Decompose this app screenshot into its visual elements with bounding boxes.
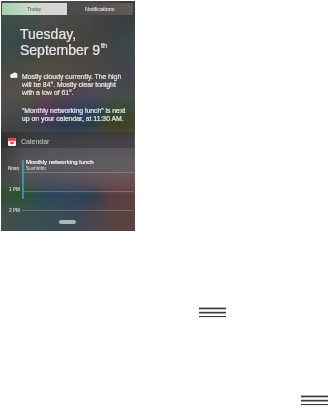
staticText: Calendar [21,138,50,146]
staticText: 1 PM [9,187,20,193]
staticText: Tuesday, [20,26,77,42]
staticText: Today [27,6,42,13]
button[interactable]: Menu [301,395,328,406]
staticText: th [101,42,108,50]
staticText: 2 PM [9,208,20,214]
staticText: Notifications [85,6,115,13]
staticText: Mostly cloudy currently. The high will b… [22,72,125,96]
button[interactable]: Notifications [67,3,133,15]
staticText: Noon [8,166,19,172]
button[interactable]: Today [2,3,67,15]
staticText: “Monthly networking lunch” is next up on… [22,106,129,122]
button[interactable]: Menu [199,307,226,318]
staticText: Monthly networking lunch [26,158,94,165]
staticText: September 9 [20,42,101,58]
staticText: Sushiritto [26,166,46,172]
